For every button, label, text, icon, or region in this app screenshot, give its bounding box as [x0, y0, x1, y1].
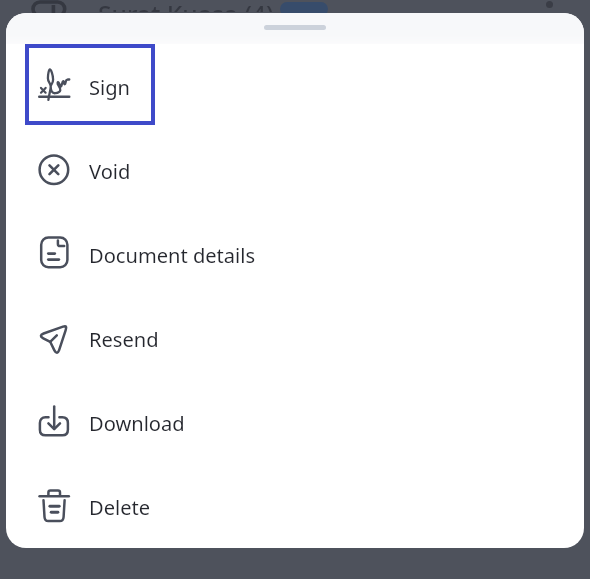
button[interactable]: Void — [6, 128, 584, 212]
button[interactable]: Resend — [6, 296, 584, 380]
button[interactable]: More options — [540, 0, 558, 14]
staticText: Resend — [89, 326, 159, 353]
staticText: Download — [89, 410, 185, 437]
button[interactable]: Status — [280, 2, 328, 16]
button[interactable]: Sign — [6, 44, 584, 128]
button[interactable]: Document details — [6, 212, 584, 296]
button[interactable]: Back — [31, 2, 67, 16]
staticText: Delete — [89, 494, 151, 521]
staticText: Document details — [89, 242, 256, 269]
staticText: Surat Kuasa (4) — [98, 0, 274, 12]
button[interactable]: Drag handle — [264, 25, 326, 30]
staticText: Void — [89, 158, 131, 185]
button[interactable]: Download — [6, 380, 584, 464]
staticText: Sign — [89, 74, 130, 101]
button[interactable]: Delete — [6, 464, 584, 548]
